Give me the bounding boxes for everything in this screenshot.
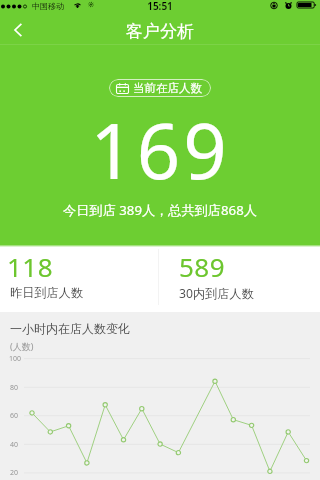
staticText: 30内到店人数	[179, 285, 254, 302]
staticText: 169	[0, 98, 320, 202]
staticText: 当前在店人数	[133, 81, 202, 95]
staticText: 一小时内在店人数变化	[10, 321, 130, 336]
staticText: 118	[7, 249, 54, 284]
staticText: (人数)	[10, 340, 34, 352]
staticText: 60	[10, 411, 19, 421]
staticText: 客户分析	[0, 21, 320, 42]
staticText: 40	[10, 440, 19, 450]
button[interactable]: 589	[159, 243, 317, 311]
staticText: 100	[9, 354, 22, 364]
staticText: 15:51	[0, 0, 320, 13]
staticText: 589	[179, 249, 226, 284]
staticText: 昨日到店人数	[10, 285, 84, 300]
button[interactable]: 当前在店人数	[109, 79, 211, 97]
staticText: 80	[10, 383, 19, 393]
staticText: 20	[10, 468, 19, 478]
button[interactable]: Back	[0, 18, 38, 44]
staticText: 中国移动	[32, 1, 64, 11]
button[interactable]: 118	[0, 243, 158, 311]
staticText: 今日到店 389人，总共到店868人	[0, 201, 320, 219]
